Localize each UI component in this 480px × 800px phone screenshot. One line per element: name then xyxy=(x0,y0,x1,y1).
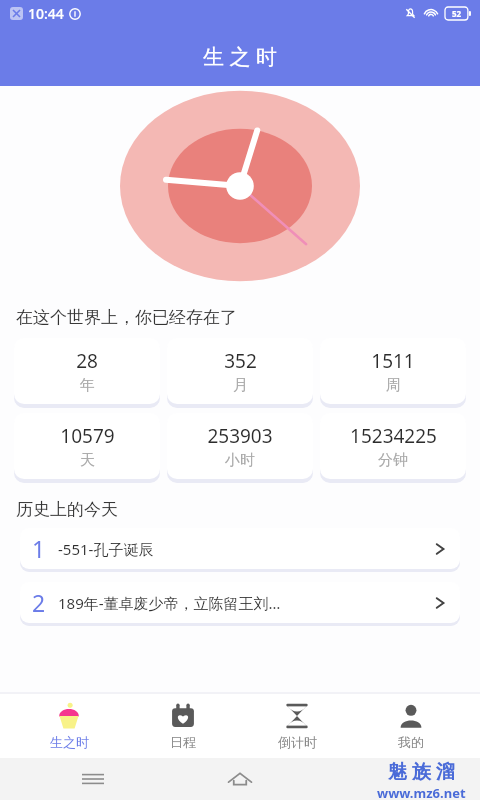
staticText: 日程 xyxy=(170,734,196,750)
staticText: 10:44 xyxy=(28,4,64,23)
staticText: 2 xyxy=(32,587,46,618)
staticText: 1511 xyxy=(371,348,415,374)
staticText: 历史上的今天 xyxy=(16,499,118,520)
staticText: 52 xyxy=(452,8,462,19)
other: 我的 xyxy=(398,703,424,729)
staticText: 15234225 xyxy=(350,423,437,449)
staticText: 189年-董卓废少帝，立陈留王刘… xyxy=(58,593,426,613)
staticText: 小时 xyxy=(225,451,255,470)
button[interactable]: 2 xyxy=(20,582,460,623)
button[interactable]: 15234225 xyxy=(320,413,466,479)
other: Home xyxy=(227,766,253,792)
staticText: www.mz6.net xyxy=(377,784,466,800)
staticText: 生之时 xyxy=(50,734,89,750)
staticText: 月 xyxy=(233,376,248,395)
staticText: 分钟 xyxy=(378,451,408,470)
other: 日程 xyxy=(170,703,196,729)
button[interactable]: 10579 xyxy=(14,413,160,479)
staticText: 天 xyxy=(80,451,95,470)
staticText: 253903 xyxy=(207,423,273,449)
staticText: -551-孔子诞辰 xyxy=(58,539,426,559)
button[interactable]: 我的 xyxy=(366,693,456,758)
button[interactable]: 生之时 xyxy=(24,693,114,758)
button[interactable]: 1511 xyxy=(320,338,466,404)
staticText: 352 xyxy=(224,348,257,374)
button[interactable]: 1 xyxy=(20,528,460,569)
staticText: 在这个世界上，你已经存在了 xyxy=(16,307,237,328)
staticText: 倒计时 xyxy=(278,734,317,750)
button[interactable]: 28 xyxy=(14,338,160,404)
staticText: 魅 族 溜 xyxy=(388,758,455,784)
staticText: 生 之 时 xyxy=(203,42,277,71)
other: 倒计时 xyxy=(283,702,311,730)
staticText: 1 xyxy=(32,533,46,564)
staticText: 28 xyxy=(76,348,98,374)
staticText: 我的 xyxy=(398,734,424,750)
staticText: 年 xyxy=(80,376,95,395)
other: Menu xyxy=(82,768,104,790)
staticText: 周 xyxy=(386,376,401,395)
button[interactable]: 日程 xyxy=(138,693,228,758)
button[interactable]: 352 xyxy=(167,338,313,404)
button[interactable]: 倒计时 xyxy=(252,693,342,758)
staticText: 10579 xyxy=(60,423,115,449)
other: 生之时 xyxy=(55,702,83,730)
button[interactable]: 253903 xyxy=(167,413,313,479)
